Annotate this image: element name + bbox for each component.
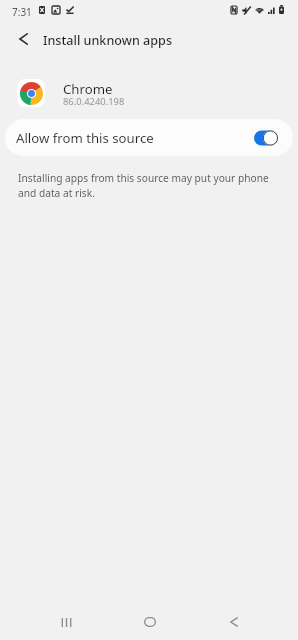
button[interactable]: Recent apps: [46, 602, 87, 640]
staticText: Allow from this source: [16, 129, 154, 147]
button[interactable]: Home: [129, 602, 170, 640]
button[interactable]: Allow from this source: [5, 119, 293, 156]
button[interactable]: Back: [213, 602, 254, 640]
staticText: Install unknown apps: [43, 32, 173, 49]
staticText: Chrome: [63, 80, 113, 98]
staticText: Installing apps from this source may put…: [18, 171, 276, 200]
staticText: 86.0.4240.198: [63, 95, 125, 108]
button[interactable]: Navigate up: [8, 24, 38, 54]
staticText: 7:31: [12, 5, 32, 19]
